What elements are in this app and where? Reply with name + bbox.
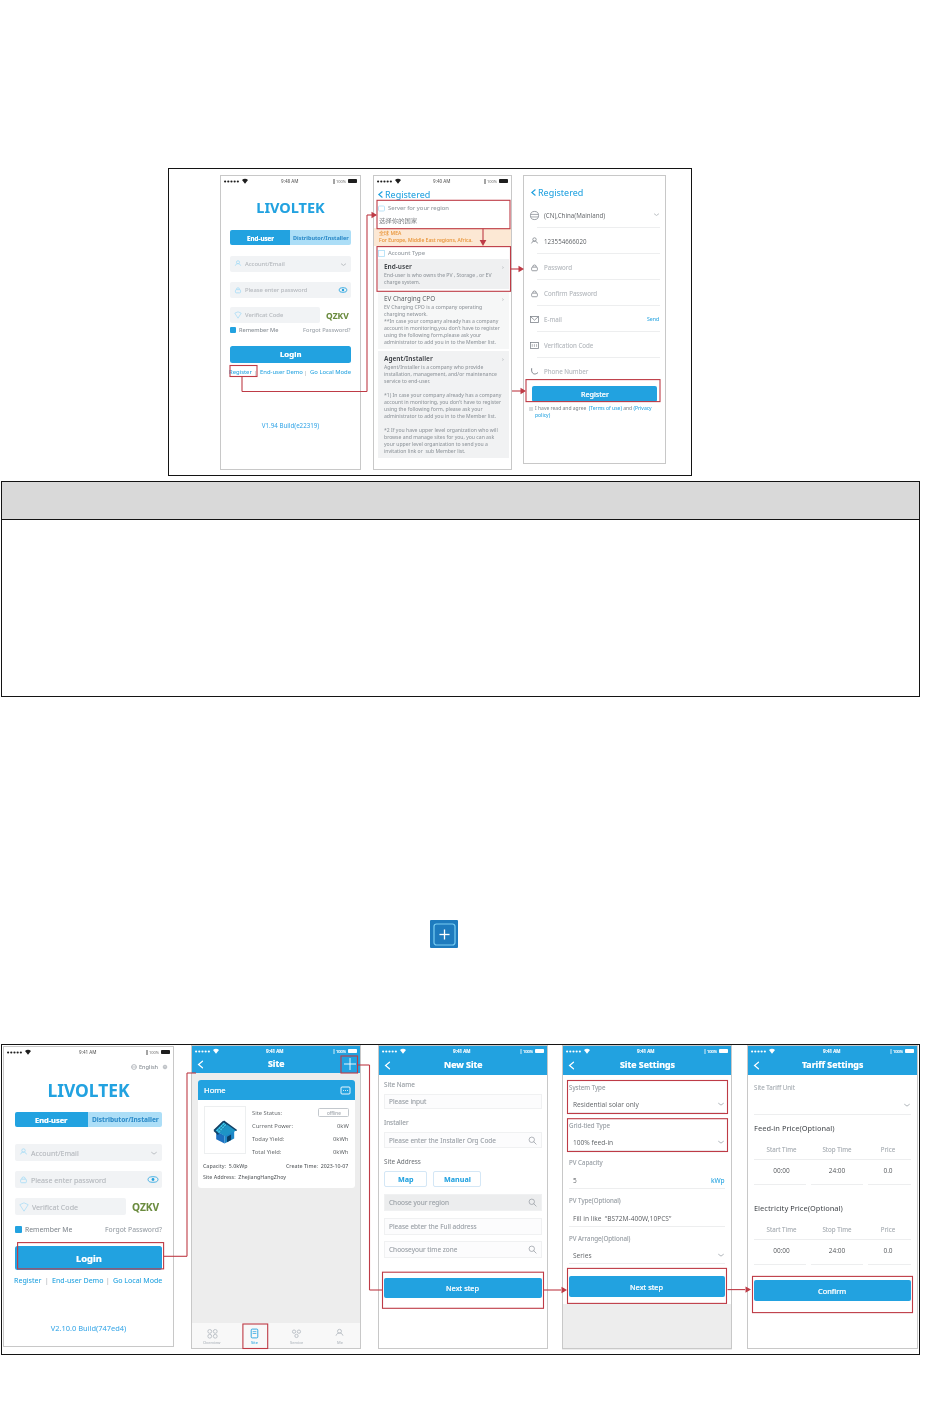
button[interactable]: Add [430, 920, 458, 948]
staticText: Grid-tied Type [569, 1121, 610, 1129]
button[interactable]: Back [382, 1060, 393, 1071]
button[interactable]: Please enter the Installer Org Code [389, 1132, 537, 1148]
button[interactable]: 123554666020 [529, 228, 660, 254]
button[interactable]: Overview [191, 1323, 233, 1349]
button[interactable]: Fill in like “BS72M-400W,10PCS” [573, 1210, 725, 1226]
staticText: Residential solar only [573, 1100, 639, 1109]
button[interactable]: 5 [573, 1172, 725, 1188]
button[interactable]: End-user [15, 1112, 88, 1127]
button[interactable]: Back [566, 1060, 577, 1071]
staticText: Verificat Code [32, 1202, 78, 1212]
staticText: 00:00 [754, 1166, 809, 1175]
staticText: System Type [569, 1083, 606, 1091]
staticText: Login [76, 1252, 102, 1265]
button[interactable]: E-mail [529, 306, 660, 332]
button[interactable]: Please input [389, 1094, 537, 1109]
button[interactable]: Manual [433, 1171, 481, 1187]
button[interactable]: Register [14, 1275, 42, 1285]
staticText: Me [337, 1340, 343, 1345]
staticText: 24:00 [809, 1246, 865, 1255]
staticText: Please ebter the Full address [389, 1222, 477, 1231]
staticText: Price [865, 1225, 911, 1233]
staticText: Chooseyour time zone [389, 1245, 458, 1254]
button[interactable]: Confirm [754, 1280, 911, 1301]
staticText: › [502, 295, 504, 303]
button[interactable]: Site options [341, 1087, 350, 1094]
button[interactable]: Distributor/Installer [88, 1112, 162, 1127]
staticText: V2.10.0 Build(747ed4) [3, 1323, 174, 1333]
staticText: Remember Me [25, 1225, 73, 1234]
button[interactable]: End-user [384, 262, 504, 286]
staticText: Site Address: ZhejiangHangZhoy [203, 1173, 287, 1180]
button[interactable]: Password [529, 254, 660, 280]
staticText: Please enter password [31, 1175, 107, 1185]
button[interactable]: End-user Demo [260, 368, 303, 376]
button[interactable]: (CN),China(Mainland) [529, 202, 660, 228]
staticText: 9:41 AM [823, 1048, 841, 1054]
staticText: Series [573, 1251, 592, 1260]
staticText: 0kW [337, 1122, 349, 1130]
button[interactable]: Back [751, 1060, 762, 1071]
button[interactable]: Register [229, 368, 252, 376]
button[interactable]: Verificat Code [234, 307, 316, 323]
staticText: 100% [336, 179, 347, 184]
staticText: 9:41 AM [637, 1048, 655, 1054]
button[interactable]: Next step [384, 1278, 542, 1298]
button[interactable]: Phone Number [529, 358, 660, 383]
button[interactable]: End-user Demo [52, 1275, 104, 1285]
staticText: Remember Me [239, 326, 279, 334]
button[interactable]: Add site [343, 1057, 357, 1071]
button[interactable]: Confirm Password [529, 280, 660, 306]
button[interactable]: Registered [529, 186, 584, 198]
staticText: Stop Time [809, 1145, 865, 1153]
button[interactable]: Account/Email [19, 1144, 158, 1161]
button[interactable]: Go Local Mode [113, 1275, 163, 1285]
staticText: End-user [384, 262, 412, 271]
button[interactable]: Register [532, 386, 657, 402]
button[interactable]: 100% feed-in [573, 1134, 725, 1150]
staticText: New Site [444, 1059, 483, 1071]
button[interactable]: Back [195, 1059, 206, 1070]
staticText: › [502, 355, 504, 363]
staticText: Service [290, 1340, 304, 1345]
button[interactable]: Next step [569, 1276, 725, 1297]
button[interactable]: Distributor/Installer [290, 230, 351, 245]
button[interactable]: Login [230, 346, 351, 363]
button[interactable]: Verification Code [529, 332, 660, 358]
button[interactable]: Registered [376, 188, 431, 200]
button[interactable]: Site [233, 1323, 275, 1349]
staticText: Forgot Password? [303, 326, 351, 334]
staticText: Site [251, 1340, 258, 1345]
button[interactable]: Go Local Mode [310, 368, 352, 376]
button[interactable]: Show password [339, 287, 347, 293]
staticText: Password [544, 263, 572, 271]
button[interactable]: Verificat Code [19, 1198, 122, 1215]
staticText: Forgot Password? [105, 1225, 162, 1234]
button[interactable]: Map [384, 1171, 427, 1187]
button[interactable]: Choose your region [389, 1194, 537, 1211]
button[interactable]: Series [573, 1247, 725, 1263]
button[interactable]: Me [318, 1323, 361, 1349]
button[interactable]: English [139, 1063, 159, 1071]
button[interactable]: Please enter password [234, 282, 347, 298]
button[interactable]: EV Charging CPO [384, 294, 504, 346]
staticText: 100% feed-in [573, 1138, 614, 1147]
staticText: Site [268, 1058, 285, 1070]
staticText: Confirm Password [544, 289, 598, 297]
button[interactable]: Account/Email [234, 256, 347, 272]
staticText: 0.0 [865, 1166, 911, 1175]
button[interactable]: Agent/Installer [384, 354, 504, 455]
button[interactable]: Please ebter the Full address [389, 1218, 537, 1235]
button[interactable]: Home [204, 1080, 350, 1100]
button[interactable]: Please enter password [19, 1171, 158, 1188]
button[interactable]: End-user [230, 230, 290, 245]
button[interactable]: Service [275, 1323, 318, 1349]
staticText: Site Status: [252, 1109, 283, 1117]
staticText: Feed-in Price(Optional) [754, 1123, 835, 1133]
button[interactable]: Login [15, 1246, 162, 1270]
button[interactable]: Chooseyour time zone [389, 1241, 537, 1258]
button[interactable]: Show password [148, 1176, 158, 1183]
button[interactable]: Residential solar only [573, 1096, 725, 1112]
staticText: V1.94 Build(e22319) [220, 421, 361, 429]
